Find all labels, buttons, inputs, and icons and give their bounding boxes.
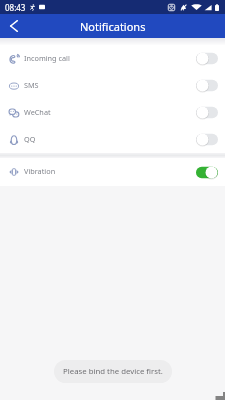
staticText: Vibration	[24, 166, 56, 176]
button[interactable]: QQ	[0, 126, 225, 153]
button[interactable]: Toggle	[196, 52, 218, 65]
button[interactable]: Vibration	[0, 158, 225, 186]
staticText: Notifications	[80, 19, 146, 34]
button[interactable]: Toggle	[196, 133, 218, 146]
staticText: Please bind the device first.	[63, 366, 163, 377]
staticText: Incoming call	[24, 53, 70, 63]
staticText: SMS	[24, 80, 39, 90]
button[interactable]: WeChat	[0, 99, 225, 126]
staticText: 08:43	[5, 2, 26, 13]
button[interactable]: Toggle	[196, 106, 218, 119]
button[interactable]: Incoming call	[0, 45, 225, 72]
button[interactable]: Toggle	[196, 79, 218, 92]
button[interactable]: SMS	[0, 72, 225, 99]
button[interactable]: Please bind the device first.	[54, 360, 172, 383]
staticText: WeChat	[24, 107, 51, 117]
button[interactable]: Back	[0, 14, 27, 38]
button[interactable]: Toggle	[196, 166, 218, 179]
staticText: QQ	[24, 134, 36, 144]
